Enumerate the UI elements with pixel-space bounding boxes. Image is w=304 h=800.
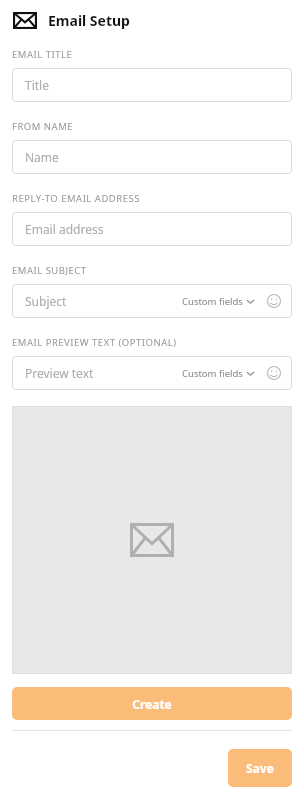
staticText: Create [132, 696, 172, 712]
staticText: Save [246, 760, 274, 776]
staticText: FROM NAME [12, 120, 74, 133]
button[interactable]: Save [228, 749, 292, 787]
staticText: Preview text [25, 365, 94, 381]
staticText: Email address [25, 221, 104, 237]
staticText: EMAIL PREVIEW TEXT (OPTIONAL) [12, 336, 177, 349]
staticText: Title [25, 77, 49, 93]
button[interactable]: Name [12, 140, 292, 174]
staticText: Subject [25, 293, 67, 309]
button[interactable]: Create [12, 687, 292, 720]
button[interactable]: Insert emoji [264, 363, 284, 383]
staticText: REPLY-TO EMAIL ADDRESS [12, 192, 140, 205]
staticText: Custom fields [182, 295, 243, 308]
button[interactable]: Preview text [12, 356, 292, 390]
other: Email [13, 12, 37, 29]
button[interactable]: Email preview image [12, 406, 292, 674]
button[interactable]: Title [12, 68, 292, 102]
staticText: Name [25, 149, 59, 165]
button[interactable]: Insert emoji [264, 291, 284, 311]
staticText: EMAIL TITLE [12, 48, 73, 61]
button[interactable]: Custom fields [180, 292, 257, 311]
button[interactable]: Email address [12, 212, 292, 246]
button[interactable]: Custom fields [180, 364, 257, 383]
staticText: Custom fields [182, 367, 243, 380]
staticText: EMAIL SUBJECT [12, 264, 87, 277]
staticText: Email Setup [48, 11, 130, 30]
button[interactable]: Subject [12, 284, 292, 318]
